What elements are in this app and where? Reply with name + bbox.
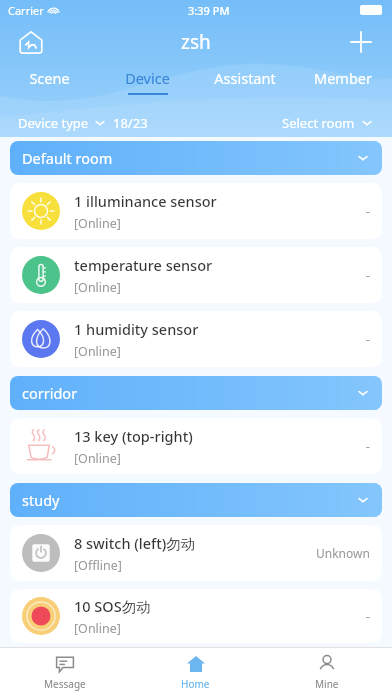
staticText: - <box>366 438 370 454</box>
staticText: zsh <box>181 29 211 55</box>
staticText: Assistant <box>214 68 276 88</box>
button[interactable]: 10 SOS勿动 <box>10 589 382 643</box>
staticText: [Online] <box>74 620 121 637</box>
button[interactable]: Device type <box>18 114 148 132</box>
button[interactable]: Home hub <box>14 25 48 59</box>
staticText: Message <box>44 677 86 691</box>
button[interactable]: Mine <box>261 648 392 696</box>
staticText: 10 SOS勿动 <box>74 596 151 616</box>
staticText: Scene <box>29 68 70 88</box>
button[interactable]: 1 humidity sensor <box>10 311 382 367</box>
staticText: - <box>366 203 370 219</box>
staticText: - <box>366 608 370 624</box>
button[interactable]: Home <box>130 648 261 696</box>
button[interactable]: Assistant <box>196 64 294 98</box>
button[interactable]: Member <box>294 64 392 98</box>
staticText: Device <box>125 68 170 88</box>
staticText: Carrier <box>8 3 44 18</box>
button[interactable]: Add device <box>344 25 378 59</box>
staticText: Home <box>181 677 210 691</box>
button[interactable]: Device <box>98 64 196 98</box>
button[interactable]: temperature sensor <box>10 247 382 303</box>
staticText: 18/23 <box>113 114 148 132</box>
staticText: Unknown <box>316 545 370 561</box>
staticText: - <box>366 267 370 283</box>
staticText: [Online] <box>74 343 121 360</box>
button[interactable]: Scene <box>0 64 98 98</box>
button[interactable]: 8 switch (left)勿动 <box>10 525 382 581</box>
staticText: corridor <box>22 383 78 403</box>
staticText: 1 illuminance sensor <box>74 191 217 211</box>
staticText: [Online] <box>74 215 121 232</box>
button[interactable]: Select room <box>282 114 374 132</box>
staticText: temperature sensor <box>74 255 213 275</box>
button[interactable]: Message <box>0 648 130 696</box>
staticText: Member <box>314 68 372 88</box>
staticText: 1 humidity sensor <box>74 319 199 339</box>
button[interactable]: 13 key (top-right) <box>10 418 382 474</box>
staticText: [Online] <box>74 450 121 467</box>
button[interactable]: study <box>10 483 382 517</box>
staticText: [Online] <box>74 279 121 296</box>
staticText: 3:39 PM <box>188 3 230 18</box>
button[interactable]: corridor <box>10 376 382 410</box>
staticText: Select room <box>282 114 355 132</box>
staticText: 8 switch (left)勿动 <box>74 533 196 553</box>
staticText: study <box>22 490 60 510</box>
button[interactable]: Default room <box>10 141 382 175</box>
staticText: Device type <box>18 114 89 132</box>
button[interactable]: 1 illuminance sensor <box>10 183 382 239</box>
staticText: [Offline] <box>74 557 122 574</box>
staticText: - <box>366 331 370 347</box>
staticText: 13 key (top-right) <box>74 426 193 446</box>
staticText: Mine <box>315 677 339 691</box>
staticText: Default room <box>22 148 113 168</box>
